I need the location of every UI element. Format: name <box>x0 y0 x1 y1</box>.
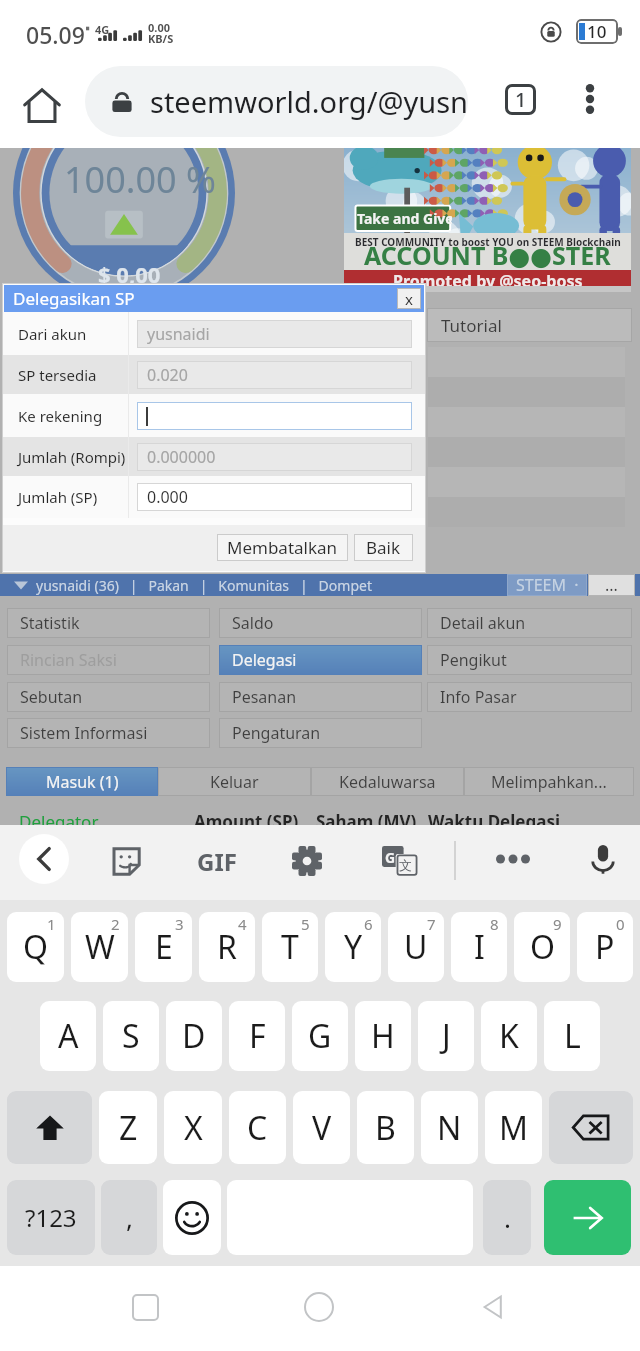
staticText: U <box>404 925 428 969</box>
staticText: Saldo <box>232 612 274 634</box>
button[interactable]: Y <box>325 912 381 982</box>
button[interactable]: Voice input <box>581 837 625 881</box>
button[interactable]: Rincian Saksi <box>7 645 210 675</box>
staticText: W <box>85 925 115 969</box>
staticText: V <box>312 1106 332 1150</box>
button[interactable]: Home <box>17 81 67 131</box>
button[interactable]: I <box>451 912 507 982</box>
button[interactable]: K <box>481 1001 537 1071</box>
staticText: A <box>58 1014 79 1058</box>
staticText: G <box>385 848 396 867</box>
button[interactable]: Enter <box>544 1180 631 1255</box>
button[interactable]: More <box>491 837 535 881</box>
button[interactable]: Q <box>7 912 64 982</box>
button[interactable]: Back <box>469 1283 517 1331</box>
button[interactable]: Recents <box>121 1283 169 1331</box>
button[interactable]: Home <box>295 1283 343 1331</box>
button[interactable]: Back <box>19 834 69 884</box>
button[interactable]: Close <box>397 288 421 309</box>
staticText: GIF <box>197 845 237 878</box>
button[interactable]: Settings <box>285 839 329 883</box>
staticText: Y <box>344 925 363 969</box>
staticText: C <box>247 1106 268 1150</box>
button[interactable]: B <box>357 1091 414 1164</box>
button[interactable]: Emoji <box>163 1180 221 1255</box>
button[interactable]: Tutorial <box>427 308 632 342</box>
button[interactable]: Pengaturan <box>219 718 422 748</box>
button[interactable]: Z <box>99 1091 157 1164</box>
button[interactable]: Masuk (1) <box>6 767 158 796</box>
staticText: Pengikut <box>440 649 507 671</box>
button[interactable]: S <box>103 1001 159 1071</box>
button[interactable]: Kedaluwarsa <box>311 767 464 796</box>
staticText: Delegator <box>19 810 99 825</box>
button[interactable]: Statistik <box>7 608 210 638</box>
button[interactable]: Pengikut <box>427 645 632 675</box>
staticText: B <box>375 1106 396 1150</box>
staticText: J <box>442 1014 451 1058</box>
staticText: Tutorial <box>441 314 502 337</box>
button[interactable]: . <box>483 1180 531 1255</box>
button[interactable]: A <box>40 1001 96 1071</box>
button[interactable]: More options <box>565 74 615 124</box>
button[interactable]: Backspace <box>549 1091 633 1164</box>
staticText: , <box>126 1200 133 1235</box>
button[interactable]: Detail akun <box>427 608 632 638</box>
staticText: G <box>308 1014 332 1058</box>
button[interactable]: E <box>135 912 192 982</box>
staticText: Pengaturan <box>232 722 321 744</box>
button[interactable]: More <box>588 574 635 596</box>
button[interactable]: Info Pasar <box>427 682 632 712</box>
button[interactable]: L <box>544 1001 600 1071</box>
staticText: Saham (MV) <box>316 810 417 825</box>
button[interactable]: W <box>71 912 128 982</box>
button[interactable]: J <box>418 1001 474 1071</box>
staticText: Amount (SP) <box>194 810 299 825</box>
button[interactable]: H <box>355 1001 411 1071</box>
staticText: 0.000000 <box>147 446 216 468</box>
button[interactable]: U <box>388 912 444 982</box>
button[interactable]: Sistem Informasi <box>7 718 210 748</box>
staticText: 2 <box>111 914 120 934</box>
button[interactable]: STEEM · <box>507 574 587 596</box>
button[interactable]: M <box>485 1091 542 1164</box>
button[interactable]: F <box>229 1001 285 1071</box>
staticText: Detail akun <box>440 612 526 634</box>
staticText: Sebutan <box>20 686 83 708</box>
button[interactable]: Keluar <box>158 767 311 796</box>
button[interactable]: steemworld.org/@yusna <box>85 66 468 137</box>
staticText: L <box>564 1014 581 1058</box>
staticText: 5 <box>301 914 310 934</box>
button[interactable]: Shift <box>7 1091 92 1164</box>
button[interactable]: ?123 <box>7 1180 95 1255</box>
button[interactable]: G <box>292 1001 348 1071</box>
button[interactable]: , <box>101 1180 157 1255</box>
button[interactable]: N <box>421 1091 478 1164</box>
button[interactable]: D <box>166 1001 222 1071</box>
staticText: 4 <box>238 914 247 934</box>
button[interactable]: Translate <box>378 839 422 883</box>
button[interactable]: Pesanan <box>219 682 422 712</box>
staticText: 1 <box>515 86 527 113</box>
button[interactable]: Membatalkan <box>217 534 348 561</box>
staticText: Sistem Informasi <box>20 722 148 744</box>
button[interactable]: Stickers <box>104 839 148 883</box>
button[interactable]: Sebutan <box>7 682 210 712</box>
button[interactable]: R <box>199 912 255 982</box>
button[interactable]: Delegasi <box>219 645 422 675</box>
staticText: 文 <box>399 857 412 873</box>
button[interactable]: O <box>514 912 570 982</box>
button[interactable]: Baik <box>354 534 413 561</box>
staticText: Pesanan <box>232 686 297 708</box>
button[interactable]: X <box>164 1091 222 1164</box>
button[interactable]: Tabs <box>495 74 545 124</box>
button[interactable]: Melimpahkan... <box>464 767 634 796</box>
button[interactable]: Saldo <box>219 608 422 638</box>
button[interactable]: C <box>229 1091 286 1164</box>
button[interactable]: P <box>577 912 633 982</box>
button[interactable]: GIF <box>192 839 242 883</box>
button[interactable]: V <box>293 1091 350 1164</box>
button[interactable]: T <box>262 912 318 982</box>
staticText: Statistik <box>20 612 80 634</box>
